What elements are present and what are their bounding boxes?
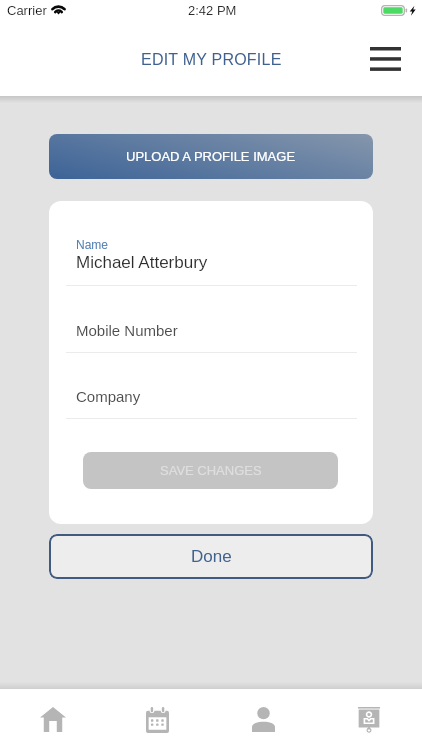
button[interactable]: Menu xyxy=(361,39,409,79)
button[interactable]: UPLOAD A PROFILE IMAGE xyxy=(49,134,373,179)
button[interactable]: Profile xyxy=(210,689,316,750)
staticText: Michael Atterbury xyxy=(76,253,208,272)
button[interactable]: Home xyxy=(0,689,105,750)
staticText: Mobile Number xyxy=(76,322,178,339)
button[interactable]: Calendar xyxy=(105,689,210,750)
staticText: Carrier xyxy=(7,3,47,18)
staticText: Done xyxy=(191,547,232,566)
staticText: UPLOAD A PROFILE IMAGE xyxy=(126,149,296,164)
staticText: 2:42 PM xyxy=(188,3,237,18)
staticText: Company xyxy=(76,388,141,405)
staticText: Name xyxy=(76,238,109,251)
button[interactable]: Presentations xyxy=(316,689,422,750)
button[interactable]: Done xyxy=(49,534,373,579)
button[interactable]: SAVE CHANGES xyxy=(83,452,338,489)
staticText: EDIT MY PROFILE xyxy=(141,51,282,69)
staticText: SAVE CHANGES xyxy=(160,463,262,478)
